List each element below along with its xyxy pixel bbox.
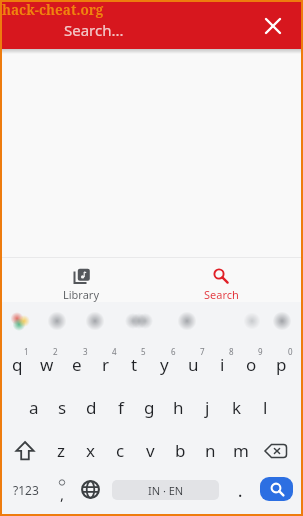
button[interactable]: s — [49, 389, 76, 425]
button[interactable]: q — [4, 346, 31, 382]
staticText: 0 — [288, 346, 293, 357]
staticText: l — [263, 396, 268, 419]
staticText: 8 — [229, 346, 234, 357]
staticText: i — [220, 353, 225, 376]
button[interactable]: g — [136, 389, 163, 425]
staticText: g — [144, 396, 155, 419]
staticText: z — [57, 439, 65, 462]
staticText: f — [118, 396, 124, 419]
button[interactable]: Library — [41, 259, 121, 302]
staticText: q — [12, 353, 23, 376]
staticText: j — [205, 396, 210, 419]
button[interactable]: i — [209, 346, 236, 382]
staticText: d — [86, 396, 97, 419]
staticText: n — [205, 439, 216, 462]
staticText: 7 — [200, 346, 205, 357]
staticText: p — [276, 353, 287, 376]
button[interactable]: Search — [181, 259, 261, 302]
button[interactable]: l — [252, 389, 279, 425]
button[interactable]: b — [167, 432, 194, 468]
staticText: o — [246, 353, 257, 376]
button[interactable]: ?123 — [4, 473, 48, 507]
staticText: w — [40, 353, 54, 376]
staticText: s — [58, 396, 67, 419]
button[interactable]: p — [268, 346, 295, 382]
staticText: 9 — [258, 346, 263, 357]
staticText: 2 — [53, 346, 58, 357]
button[interactable] — [260, 477, 293, 501]
staticText: hack-cheat.org — [2, 1, 104, 19]
staticText: 3 — [83, 346, 88, 357]
button[interactable]: x — [77, 432, 104, 468]
button[interactable]: n — [197, 432, 224, 468]
button[interactable]: h — [165, 389, 192, 425]
staticText: ?123 — [13, 482, 39, 498]
button[interactable]: y — [151, 346, 178, 382]
staticText: y — [160, 353, 169, 376]
staticText: Search — [204, 287, 239, 302]
button[interactable]: z — [47, 432, 74, 468]
staticText: 5 — [141, 346, 146, 357]
button[interactable]: f — [107, 389, 134, 425]
button[interactable]: u — [180, 346, 207, 382]
button[interactable] — [74, 473, 107, 507]
staticText: m — [233, 439, 249, 462]
button[interactable]: v — [137, 432, 164, 468]
staticText: a — [29, 396, 39, 419]
staticText: Library — [63, 287, 100, 302]
button[interactable]: j — [194, 389, 221, 425]
staticText: 1 — [24, 346, 29, 357]
staticText: . — [238, 480, 243, 502]
button[interactable]: c — [107, 432, 134, 468]
button[interactable]: k — [223, 389, 250, 425]
staticText: v — [146, 439, 155, 462]
staticText: h — [173, 396, 184, 419]
button[interactable]: a — [20, 389, 47, 425]
staticText: t — [131, 353, 138, 376]
staticText: IN · EN — [148, 483, 184, 498]
button[interactable]: o — [238, 346, 265, 382]
button[interactable]: r — [92, 346, 119, 382]
staticText: c — [116, 439, 125, 462]
staticText: b — [175, 439, 186, 462]
button[interactable]: d — [78, 389, 105, 425]
button[interactable] — [256, 432, 296, 470]
button[interactable] — [253, 6, 293, 46]
staticText: , — [60, 484, 65, 504]
staticText: k — [232, 396, 242, 419]
button[interactable]: , — [47, 473, 77, 504]
button[interactable]: e — [63, 346, 90, 382]
staticText: x — [86, 439, 95, 462]
button[interactable] — [6, 432, 44, 470]
staticText: 6 — [171, 346, 176, 357]
button[interactable]: m — [227, 432, 254, 468]
staticText: 4 — [112, 346, 117, 357]
staticText: u — [188, 353, 199, 376]
button[interactable]: t — [121, 346, 148, 382]
button[interactable]: IN · EN — [112, 480, 219, 500]
staticText: r — [102, 353, 110, 376]
button[interactable]: . — [226, 474, 254, 508]
staticText: e — [72, 353, 82, 376]
staticText: Search... — [64, 20, 124, 40]
button[interactable]: w — [33, 346, 60, 382]
